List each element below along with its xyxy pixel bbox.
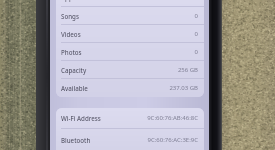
staticText: Apps	[61, 0, 76, 1]
button[interactable]: Photos	[56, 43, 204, 61]
button[interactable]: Capacity	[56, 61, 204, 79]
button[interactable]: Wi-Fi Address	[56, 108, 204, 129]
staticText: Songs	[61, 12, 79, 20]
staticText: Photos	[61, 48, 82, 56]
staticText: 0	[194, 48, 198, 56]
staticText: 237.03 GB	[169, 84, 198, 92]
staticText: 256 GB	[177, 66, 198, 74]
staticText: 9C:60:76:AC:3E:9C	[147, 136, 198, 144]
staticText: 9C:60:76:AB:46:8C	[147, 114, 198, 122]
button[interactable]: Available	[56, 79, 204, 97]
staticText: Bluetooth	[61, 136, 91, 144]
staticText: Videos	[61, 30, 81, 38]
staticText: Capacity	[61, 66, 87, 74]
button[interactable]: Videos	[56, 25, 204, 43]
button[interactable]: Apps	[56, 0, 204, 7]
staticText: Available	[61, 84, 88, 92]
staticText: 0	[194, 30, 198, 38]
staticText: 0	[194, 12, 198, 20]
button[interactable]: Songs	[56, 7, 204, 25]
staticText: Wi-Fi Address	[61, 114, 101, 122]
button[interactable]: Bluetooth	[56, 129, 204, 150]
